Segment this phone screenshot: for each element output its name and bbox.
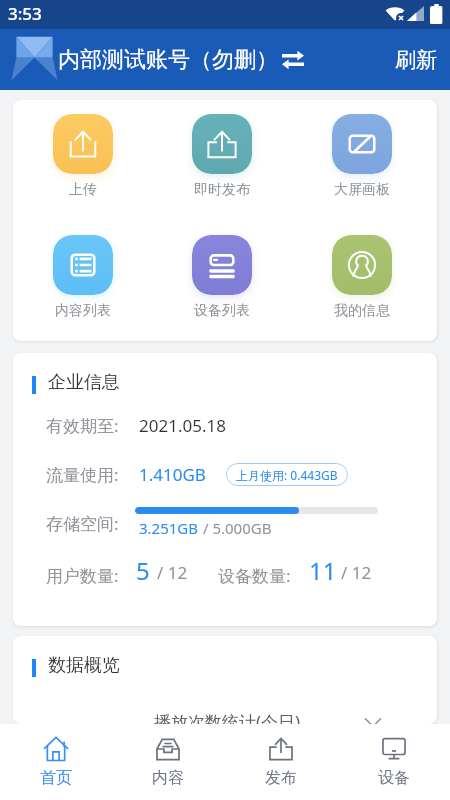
button[interactable]: 内容 <box>112 724 224 800</box>
staticText: 有效期至: <box>46 414 119 437</box>
button[interactable]: 上传 <box>13 114 152 199</box>
staticText: / 12 <box>341 561 372 584</box>
staticText: 2021.05.18 <box>139 414 226 437</box>
button[interactable]: 首页 <box>0 724 112 800</box>
staticText: 上传 <box>69 181 97 199</box>
button[interactable]: Switch account <box>278 45 308 75</box>
staticText: 发布 <box>265 768 297 788</box>
staticText: 大屏画板 <box>334 181 390 199</box>
staticText: 3:53 <box>8 2 42 25</box>
staticText: 内部测试账号（勿删） <box>58 46 278 74</box>
staticText: 即时发布 <box>194 181 250 199</box>
button[interactable]: 我的信息 <box>292 235 432 320</box>
staticText: 首页 <box>40 768 72 788</box>
staticText: 11 <box>309 554 337 587</box>
button[interactable]: 设备列表 <box>152 235 292 320</box>
staticText: 内容 <box>152 768 184 788</box>
button[interactable]: 设备 <box>337 724 450 800</box>
staticText: 播放次数统计(今日) <box>154 710 301 724</box>
staticText: 3.251GB <box>139 518 199 538</box>
button[interactable]: 大屏画板 <box>292 114 432 199</box>
staticText: 设备 <box>378 768 410 788</box>
staticText: 我的信息 <box>334 302 390 320</box>
staticText: 1.410GB <box>139 463 206 486</box>
staticText: / 5.000GB <box>199 518 272 538</box>
staticText: 用户数量: <box>46 564 119 587</box>
staticText: 设备数量: <box>218 564 291 587</box>
staticText: 存储空间: <box>46 512 119 535</box>
button[interactable]: 发布 <box>224 724 337 800</box>
staticText: 上月使用: 0.443GB <box>236 467 338 483</box>
staticText: 5 <box>136 554 150 587</box>
staticText: 流量使用: <box>46 463 119 486</box>
button[interactable]: 内容列表 <box>13 235 152 320</box>
staticText: 内容列表 <box>55 302 111 320</box>
button[interactable]: 播放次数统计(今日) <box>13 702 437 724</box>
staticText: 数据概览 <box>48 654 120 677</box>
staticText: 刷新 <box>395 47 437 73</box>
staticText: / 12 <box>157 561 188 584</box>
button[interactable]: 即时发布 <box>152 114 292 199</box>
staticText: 企业信息 <box>48 371 120 394</box>
button[interactable]: 刷新 <box>391 41 441 79</box>
staticText: 设备列表 <box>194 302 250 320</box>
